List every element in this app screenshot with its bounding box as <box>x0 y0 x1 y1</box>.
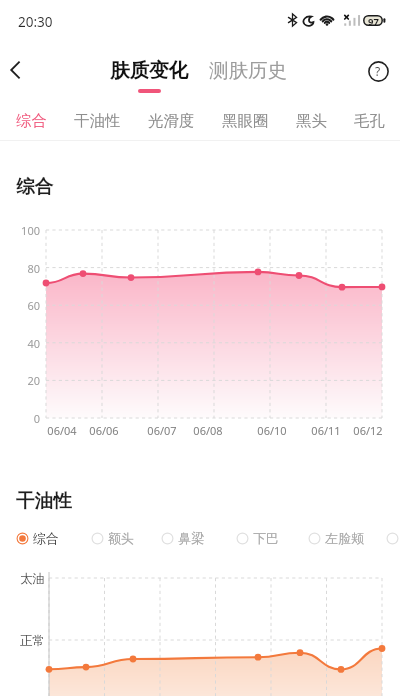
button[interactable]: 鼻梁 <box>160 530 204 546</box>
staticText: 100 <box>6 223 40 238</box>
staticText: 06/07 <box>140 423 184 438</box>
button[interactable]: 左脸颊 <box>307 530 364 546</box>
button[interactable]: 肤质变化 <box>106 58 192 93</box>
button[interactable]: 黑头 <box>296 101 327 141</box>
staticText: 下巴 <box>253 530 279 546</box>
button[interactable]: 黑眼圈 <box>222 101 269 141</box>
staticText: ? <box>375 63 381 79</box>
staticText: 干油性 <box>16 489 72 512</box>
staticText: 干油性 <box>74 111 121 131</box>
staticText: 06/06 <box>82 423 126 438</box>
button[interactable]: 毛孔 <box>354 101 385 141</box>
button[interactable]: 综合 <box>16 101 47 141</box>
staticText: 鼻梁 <box>178 530 204 546</box>
staticText: 06/08 <box>186 423 230 438</box>
button[interactable]: 干油性 <box>74 101 121 141</box>
button[interactable]: 下巴 <box>235 530 279 546</box>
staticText: 黑眼圈 <box>222 111 269 131</box>
staticText: 60 <box>6 298 40 313</box>
staticText: 0 <box>6 411 40 426</box>
button[interactable]: 右脸颊 <box>385 530 400 546</box>
staticText: 06/11 <box>304 423 348 438</box>
button[interactable]: Help <box>360 53 396 89</box>
staticText: 光滑度 <box>148 111 195 131</box>
staticText: 左脸颊 <box>325 530 364 546</box>
staticText: 综合 <box>16 175 53 198</box>
button[interactable]: 测肤历史 <box>205 58 291 92</box>
staticText: 40 <box>6 336 40 351</box>
staticText: 20:30 <box>18 13 53 31</box>
staticText: 测肤历史 <box>209 58 287 83</box>
staticText: 肤质变化 <box>110 58 188 83</box>
staticText: 80 <box>6 261 40 276</box>
staticText: 06/10 <box>250 423 294 438</box>
staticText: 06/12 <box>346 423 390 438</box>
staticText: 综合 <box>33 530 59 546</box>
staticText: 额头 <box>108 530 134 546</box>
staticText: 97 <box>364 15 383 28</box>
button[interactable]: 综合 <box>15 530 59 546</box>
staticText: 20 <box>6 373 40 388</box>
button[interactable]: 光滑度 <box>148 101 195 141</box>
button[interactable]: 额头 <box>90 530 134 546</box>
button[interactable]: Back <box>0 52 34 88</box>
staticText: 06/04 <box>40 423 84 438</box>
staticText: 正常 <box>20 633 45 649</box>
staticText: 毛孔 <box>354 111 385 131</box>
staticText: 太油 <box>20 571 45 587</box>
staticText: 综合 <box>16 111 47 131</box>
staticText: 黑头 <box>296 111 327 131</box>
